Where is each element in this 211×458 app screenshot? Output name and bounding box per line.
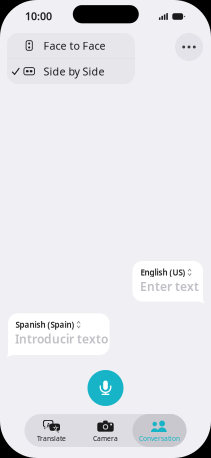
staticText: Conversation — [139, 434, 180, 443]
button[interactable]: Spanish (Spain) — [5, 313, 109, 358]
staticText: 文 — [52, 425, 59, 433]
button[interactable]: More options — [175, 33, 203, 61]
staticText: Spanish (Spain) — [15, 319, 74, 330]
button[interactable]: Face to Face — [7, 33, 135, 58]
staticText: English (US) — [140, 267, 185, 278]
button[interactable]: English (US) — [132, 261, 206, 304]
staticText: Camera — [93, 434, 118, 443]
staticText: 10:00 — [25, 9, 52, 23]
staticText: Introducir texto — [15, 331, 108, 347]
staticText: Enter text — [140, 278, 199, 294]
staticText: Face to Face — [43, 39, 105, 53]
button[interactable]: Conversation — [132, 414, 186, 447]
button[interactable]: A — [24, 414, 78, 447]
button[interactable]: Record — [87, 370, 123, 406]
staticText: Side by Side — [43, 64, 104, 78]
staticText: Translate — [37, 434, 66, 443]
button[interactable]: Side by Side — [7, 59, 135, 84]
button[interactable]: Camera — [78, 414, 132, 447]
staticText: A — [47, 421, 51, 428]
